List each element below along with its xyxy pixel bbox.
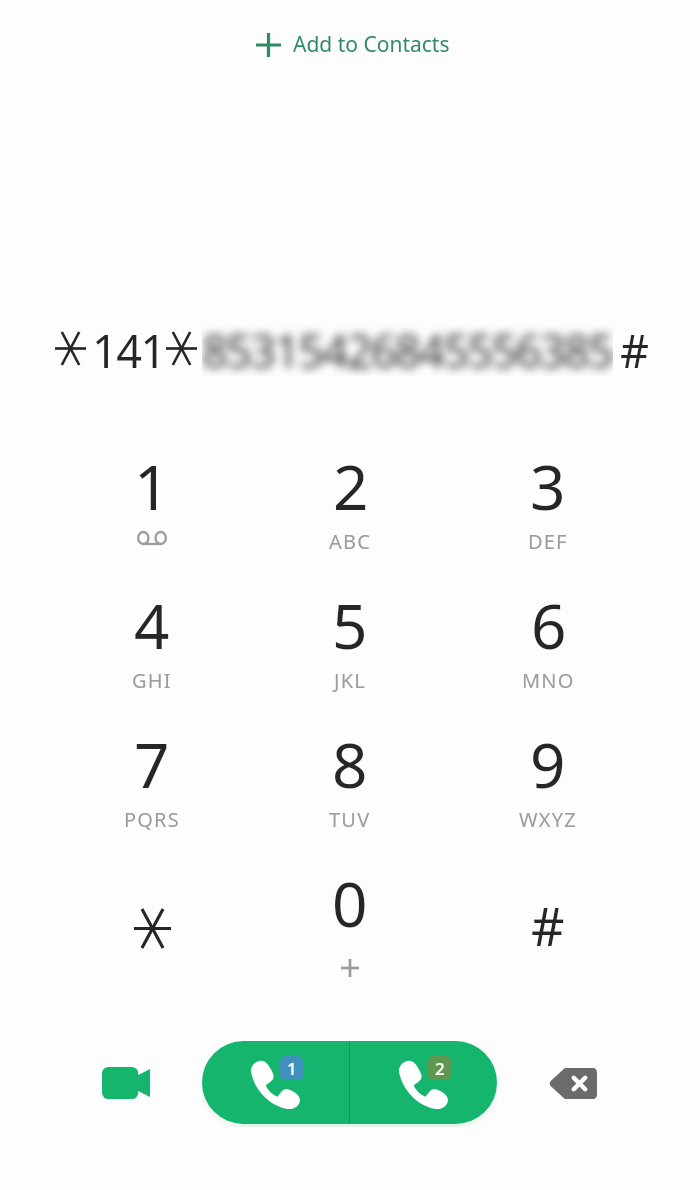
button[interactable]: 8 TUV: [251, 713, 449, 852]
button[interactable]: 9 WXYZ: [449, 713, 647, 852]
button[interactable]: 3 DEF: [449, 435, 647, 574]
staticText: #: [620, 320, 650, 376]
button[interactable]: 0 plus: [251, 852, 449, 991]
button[interactable]: 2 ABC: [251, 435, 449, 574]
staticText: 5: [332, 583, 368, 667]
button[interactable]: 4 GHI: [53, 574, 251, 713]
staticText: 7: [134, 722, 170, 806]
staticText: 9: [530, 722, 566, 806]
button[interactable]: 7 PQRS: [53, 713, 251, 852]
staticText: 1: [287, 1057, 297, 1080]
button[interactable]: Backspace: [538, 1048, 608, 1118]
staticText: GHI: [132, 667, 172, 694]
staticText: JKL: [334, 667, 366, 694]
button[interactable]: Add to Contacts: [246, 22, 460, 67]
button[interactable]: Video call: [91, 1048, 161, 1118]
staticText: Add to Contacts: [293, 30, 450, 59]
staticText: 1: [134, 444, 170, 528]
button[interactable]: 1 voicemail: [53, 435, 251, 574]
button[interactable]: Call with SIM 1: [202, 1041, 349, 1124]
staticText: 8: [332, 722, 368, 806]
staticText: 3: [530, 444, 566, 528]
staticText: 4: [134, 583, 170, 667]
staticText: #: [531, 890, 565, 961]
staticText: MNO: [522, 667, 575, 694]
button[interactable]: 5 JKL: [251, 574, 449, 713]
button[interactable]: Pound: [449, 852, 647, 991]
staticText: 0: [332, 861, 368, 945]
button[interactable]: 6 MNO: [449, 574, 647, 713]
button[interactable]: Star: [53, 852, 251, 991]
button[interactable]: Dialed number: [0, 320, 700, 376]
staticText: 141: [92, 320, 165, 376]
staticText: PQRS: [124, 806, 180, 833]
staticText: TUV: [329, 806, 371, 833]
staticText: 2: [333, 444, 369, 528]
staticText: 85315426845556385: [202, 320, 613, 376]
staticText: DEF: [528, 528, 568, 555]
staticText: WXYZ: [519, 806, 577, 833]
staticText: 6: [531, 583, 567, 667]
staticText: 2: [435, 1057, 445, 1080]
button[interactable]: Call with SIM 2: [349, 1041, 497, 1124]
staticText: ABC: [329, 528, 372, 555]
